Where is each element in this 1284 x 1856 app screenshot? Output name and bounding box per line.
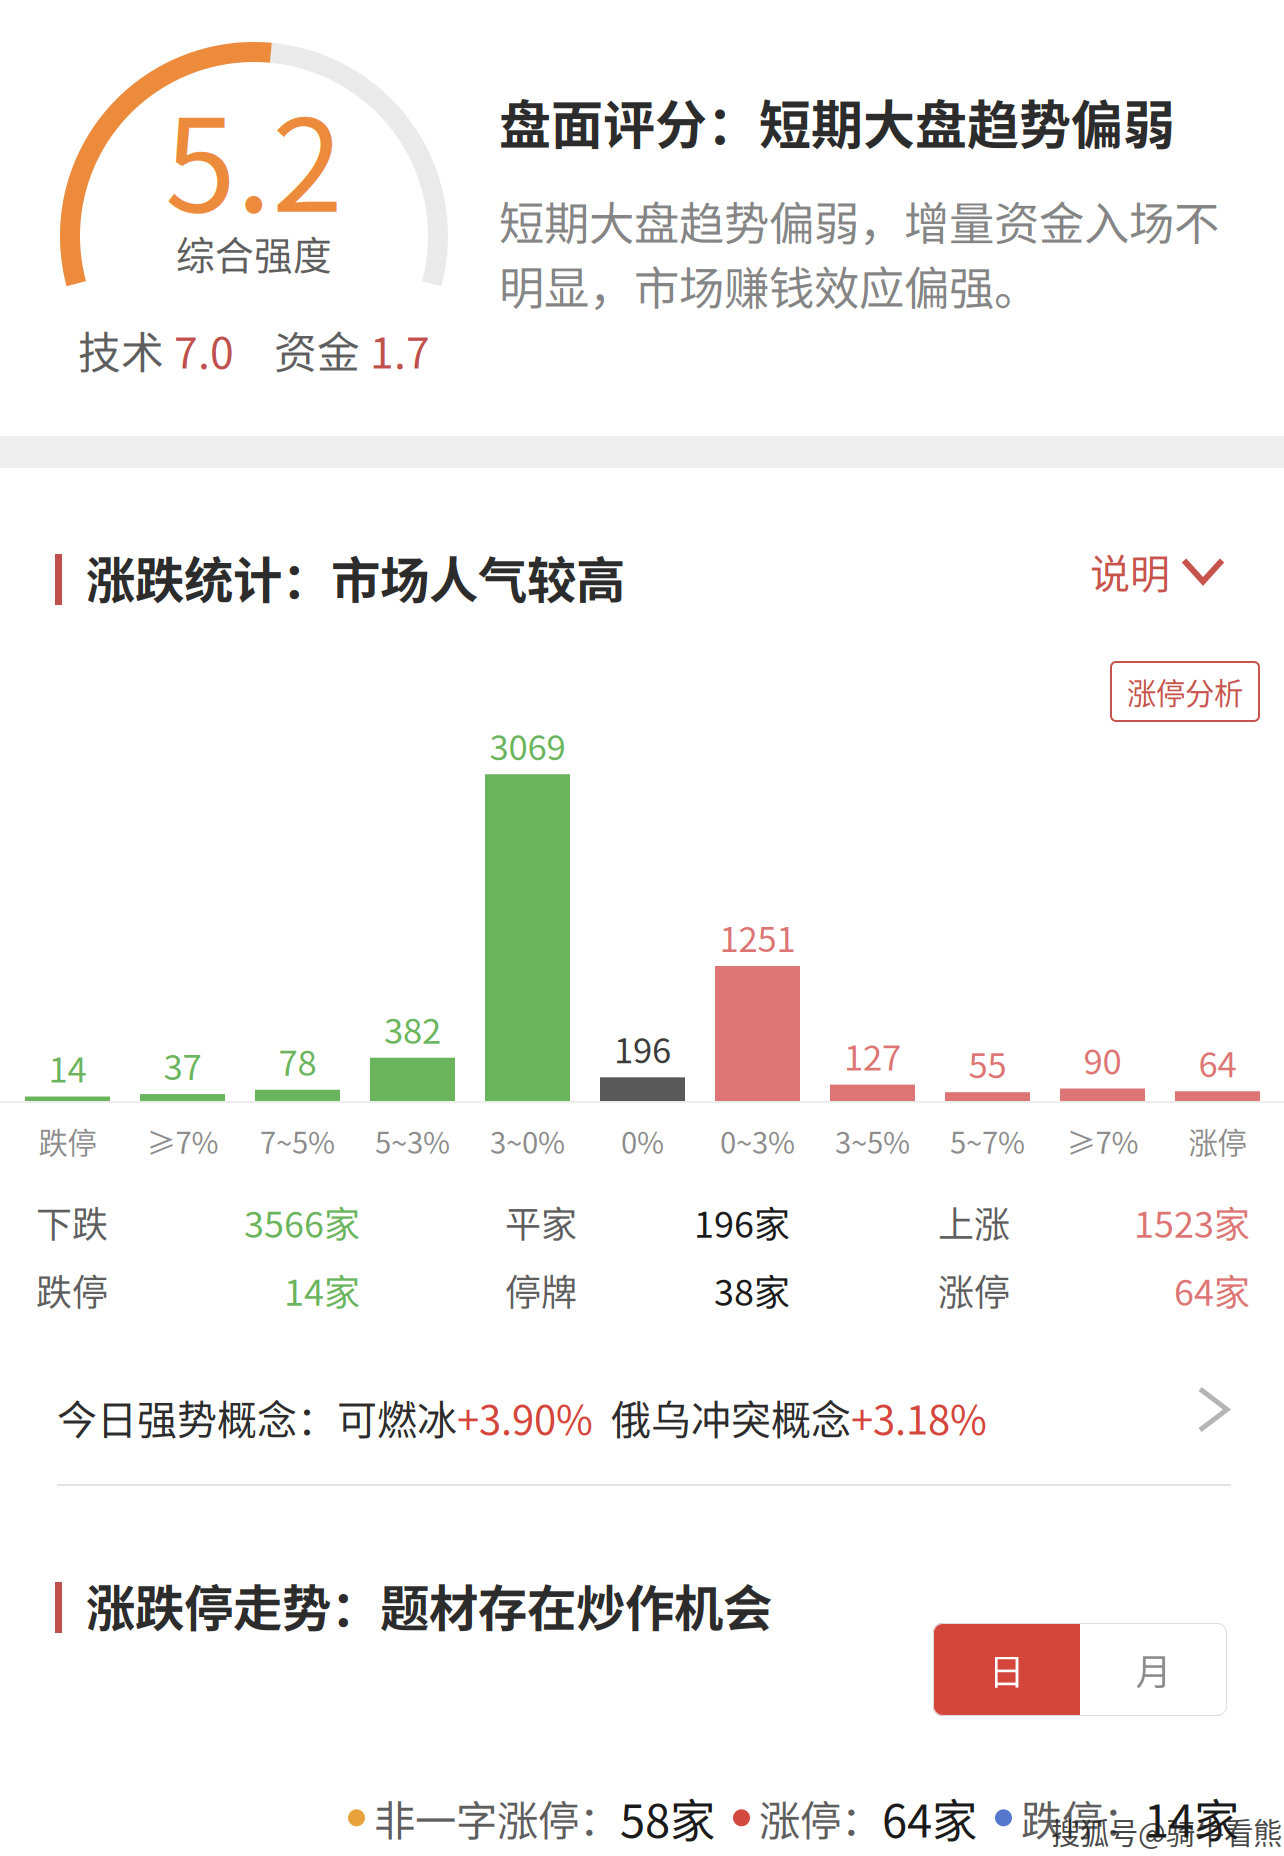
staticText: 64	[1198, 1037, 1236, 1087]
staticText: 38家	[714, 1264, 790, 1316]
staticText: 64家	[882, 1785, 977, 1851]
staticText: 64家	[1174, 1264, 1250, 1316]
staticText: 明显，市场赚钱效应偏强。	[499, 253, 1039, 318]
staticText: +3.18%	[851, 1388, 987, 1446]
button[interactable]: 月	[1080, 1623, 1227, 1716]
staticText: 下跌	[36, 1196, 108, 1248]
staticText: 综合强度	[176, 225, 332, 281]
staticText: 涨停	[1188, 1120, 1246, 1162]
staticText: 14家	[284, 1264, 360, 1316]
staticText: 196	[614, 1023, 671, 1073]
staticText: ≥7%	[146, 1120, 218, 1162]
button[interactable]: 日	[933, 1623, 1080, 1716]
staticText: 涨停	[938, 1264, 1010, 1316]
staticText: 盘面评分：短期大盘趋势偏弱	[499, 84, 1175, 159]
staticText: 5~3%	[375, 1120, 450, 1162]
staticText: 1251	[719, 912, 795, 962]
staticText: 俄乌冲突概念	[593, 1388, 851, 1446]
staticText: 1.7	[370, 319, 430, 381]
staticText: 今日强势概念：可燃冰	[57, 1388, 457, 1446]
staticText: 3~5%	[835, 1120, 910, 1162]
staticText: 0%	[621, 1120, 664, 1162]
staticText: +3.90%	[457, 1388, 593, 1446]
staticText: 搜狐号@骑牛看熊	[1051, 1810, 1282, 1852]
staticText: 技术	[78, 319, 174, 381]
staticText: 5.2	[165, 63, 343, 249]
staticText: ≥7%	[1066, 1120, 1138, 1162]
staticText: 5~7%	[950, 1120, 1025, 1162]
staticText: 说明	[1090, 542, 1170, 600]
staticText: 196家	[694, 1196, 790, 1248]
button[interactable]: 说明	[1090, 542, 1222, 600]
staticText: 跌停：	[1012, 1788, 1144, 1848]
staticText: 14	[48, 1042, 86, 1092]
staticText: 127	[844, 1030, 901, 1081]
staticText: 停牌	[505, 1264, 577, 1316]
staticText: 涨跌停走势：题材存在炒作机会	[86, 1569, 772, 1640]
staticText: 资金	[234, 319, 370, 381]
staticText: 382	[384, 1003, 441, 1054]
staticText: 日	[988, 1643, 1024, 1695]
staticText: 78	[278, 1036, 316, 1086]
button[interactable]: 涨停分析	[1111, 662, 1259, 721]
staticText: 平家	[505, 1196, 577, 1248]
staticText: 1523家	[1134, 1196, 1250, 1248]
staticText: 58家	[620, 1785, 715, 1851]
staticText: 非一字涨停：	[365, 1788, 620, 1848]
staticText: 3566家	[244, 1196, 360, 1248]
staticText: 0~3%	[720, 1120, 795, 1162]
staticText: 上涨	[938, 1196, 1010, 1248]
button[interactable]: 今日强势概念：可燃冰	[57, 1382, 1237, 1484]
staticText: 跌停	[38, 1120, 96, 1162]
staticText: 90	[1083, 1034, 1121, 1084]
staticText: 涨跌统计：市场人气较高	[86, 541, 625, 612]
staticText: 14家	[1144, 1785, 1239, 1851]
staticText: 7~5%	[260, 1120, 335, 1162]
staticText: 3~0%	[490, 1120, 565, 1162]
staticText: 3069	[489, 720, 565, 770]
staticText: 涨停：	[750, 1788, 882, 1848]
staticText: 短期大盘趋势偏弱，增量资金入场不	[499, 188, 1219, 254]
staticText: 跌停	[36, 1264, 108, 1316]
staticText: 7.0	[174, 319, 234, 381]
staticText: 37	[163, 1040, 201, 1090]
staticText: 涨停分析	[1127, 670, 1243, 713]
staticText: 月	[1135, 1643, 1171, 1695]
staticText: 55	[968, 1038, 1006, 1088]
